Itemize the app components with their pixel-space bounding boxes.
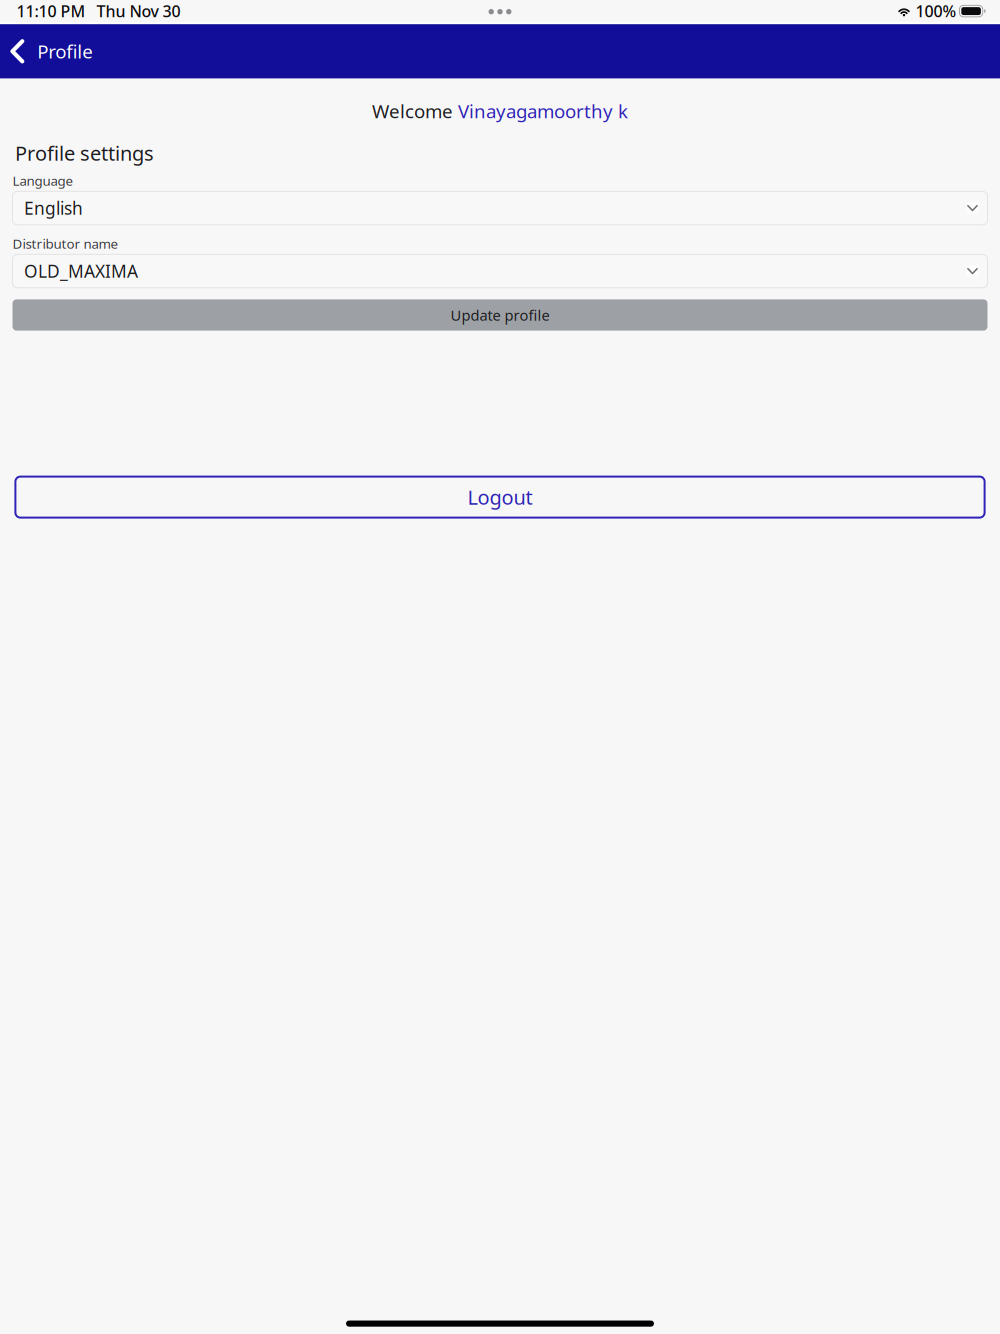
button[interactable]: Update profile	[12, 299, 987, 331]
staticText: Logout	[467, 484, 532, 510]
button[interactable]: English	[12, 191, 987, 225]
staticText: Vinayagamoorthy k	[458, 98, 628, 123]
staticText: Language	[12, 172, 73, 189]
button[interactable]: OLD_MAXIMA	[12, 254, 987, 288]
staticText: Profile	[37, 39, 93, 64]
staticText: 11:10 PM	[16, 0, 85, 22]
staticText: 100%	[915, 0, 956, 22]
staticText: OLD_MAXIMA	[24, 260, 138, 283]
button[interactable]: Back	[0, 24, 107, 79]
button[interactable]: Logout	[15, 477, 985, 518]
staticText: English	[24, 197, 83, 220]
staticText: Welcome	[372, 98, 458, 123]
staticText: Update profile	[450, 305, 549, 325]
staticText: Distributor name	[12, 235, 118, 252]
staticText: Thu Nov 30	[96, 0, 180, 22]
staticText: Profile settings	[15, 140, 154, 166]
